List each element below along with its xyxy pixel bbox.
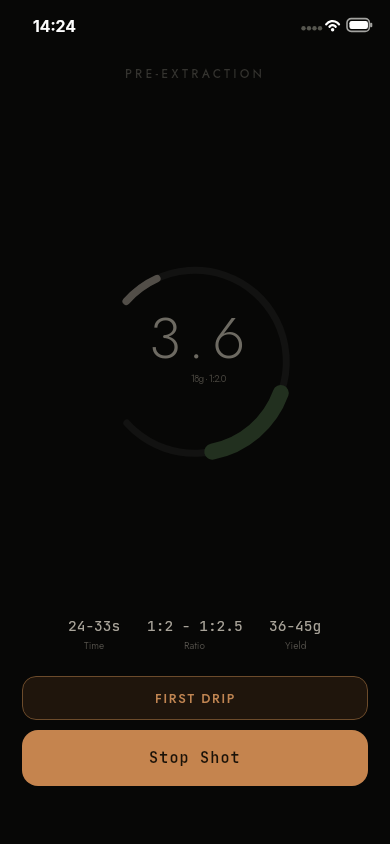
staticText: 3.6 (6, 296, 390, 380)
button[interactable]: FIRST DRIP (22, 676, 368, 720)
staticText: FIRST DRIP (155, 689, 236, 708)
staticText: 36-45g (269, 616, 322, 635)
other: Wi-Fi (324, 17, 342, 33)
staticText: 14:24 (33, 16, 76, 35)
staticText: Yield (285, 638, 307, 652)
staticText: Time (84, 638, 105, 652)
button[interactable]: 36-45g (245, 616, 346, 652)
staticText: Stop Shot (149, 748, 241, 768)
staticText: 18g · 1:2.0 (13, 371, 390, 385)
staticText: 1:2 - 1:2.5 (147, 616, 243, 635)
staticText: PRE-EXTRACTION (0, 65, 390, 82)
other: Battery full (347, 17, 373, 33)
other: Cellular signal (300, 17, 321, 33)
button[interactable]: Stop Shot (22, 730, 368, 786)
button[interactable]: 1:2 - 1:2.5 (144, 616, 245, 652)
button[interactable]: 24-33s (44, 616, 144, 652)
staticText: 24-33s (68, 616, 121, 635)
staticText: Ratio (184, 638, 205, 652)
